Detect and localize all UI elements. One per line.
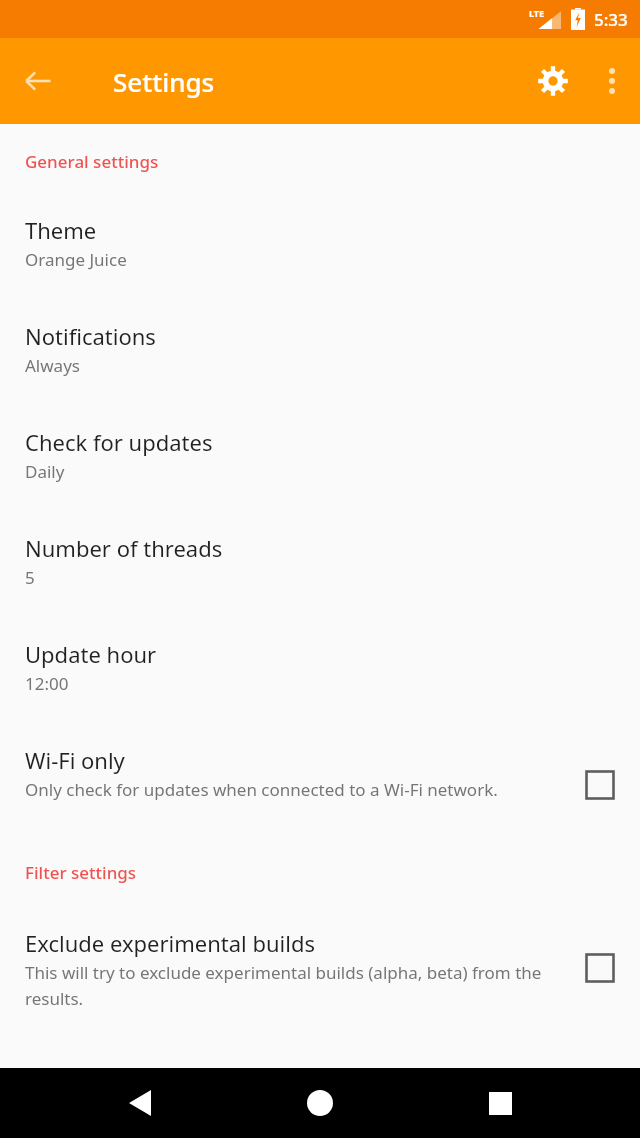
staticText: Settings	[113, 64, 215, 99]
staticText: 12:00	[25, 672, 69, 695]
staticText: Orange Juice	[25, 248, 127, 271]
staticText: Wi-Fi only	[25, 745, 125, 775]
button[interactable]: Check for updates	[0, 377, 640, 483]
staticText: Only check for updates when connected to…	[25, 778, 498, 801]
staticText: Theme	[25, 215, 97, 245]
staticText: Exclude experimental builds	[25, 928, 316, 958]
staticText: Notifications	[25, 321, 156, 351]
staticText: 5:33	[594, 8, 628, 31]
staticText: 5	[25, 566, 35, 589]
button[interactable]: More options	[584, 53, 640, 109]
staticText: Check for updates	[25, 427, 213, 457]
button[interactable]: Settings	[522, 50, 584, 112]
button[interactable]: Exclude experimental builds	[0, 884, 640, 1010]
button[interactable]: Wi-Fi only	[0, 695, 640, 807]
staticText: General settings	[25, 150, 159, 173]
button[interactable]: Notifications	[0, 271, 640, 377]
button[interactable]: Back	[110, 1073, 170, 1133]
staticText: Number of threads	[25, 533, 223, 563]
staticText: Daily	[25, 460, 65, 483]
staticText: Filter settings	[25, 861, 137, 884]
button[interactable]: Theme	[0, 173, 640, 271]
button[interactable]: Number of threads	[0, 483, 640, 589]
staticText: Update hour	[25, 639, 157, 669]
button[interactable]: Exclude experimental builds	[578, 946, 622, 990]
staticText: LTE	[529, 7, 545, 19]
button[interactable]: Update hour	[0, 589, 640, 695]
staticText: Always	[25, 354, 80, 377]
button[interactable]: Recent apps	[470, 1073, 530, 1133]
staticText: This will try to exclude experimental bu…	[25, 961, 564, 1010]
button[interactable]: Wi-Fi only	[578, 763, 622, 807]
button[interactable]: Back	[8, 51, 68, 111]
button[interactable]: Home	[290, 1073, 350, 1133]
